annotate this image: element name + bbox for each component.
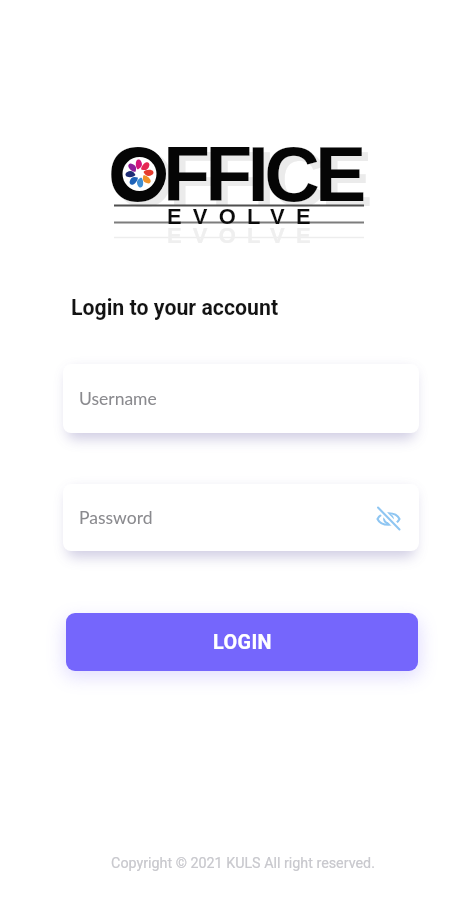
button[interactable]: Username <box>63 364 419 433</box>
staticText: Login to your account <box>71 295 279 320</box>
staticText: OFFICE <box>108 131 362 217</box>
button[interactable]: Password <box>63 484 419 551</box>
staticText: LOGIN <box>213 631 272 654</box>
staticText: EVOLVE <box>167 223 322 248</box>
staticText: OFFICE <box>114 136 368 222</box>
button[interactable]: LOGIN <box>66 613 418 671</box>
staticText: Password <box>79 507 153 528</box>
staticText: Copyright © 2021 KULS All right reserved… <box>11 855 464 872</box>
button[interactable]: Show password <box>371 501 405 535</box>
staticText: Username <box>79 388 157 409</box>
staticText: EVOLVE <box>167 204 322 229</box>
